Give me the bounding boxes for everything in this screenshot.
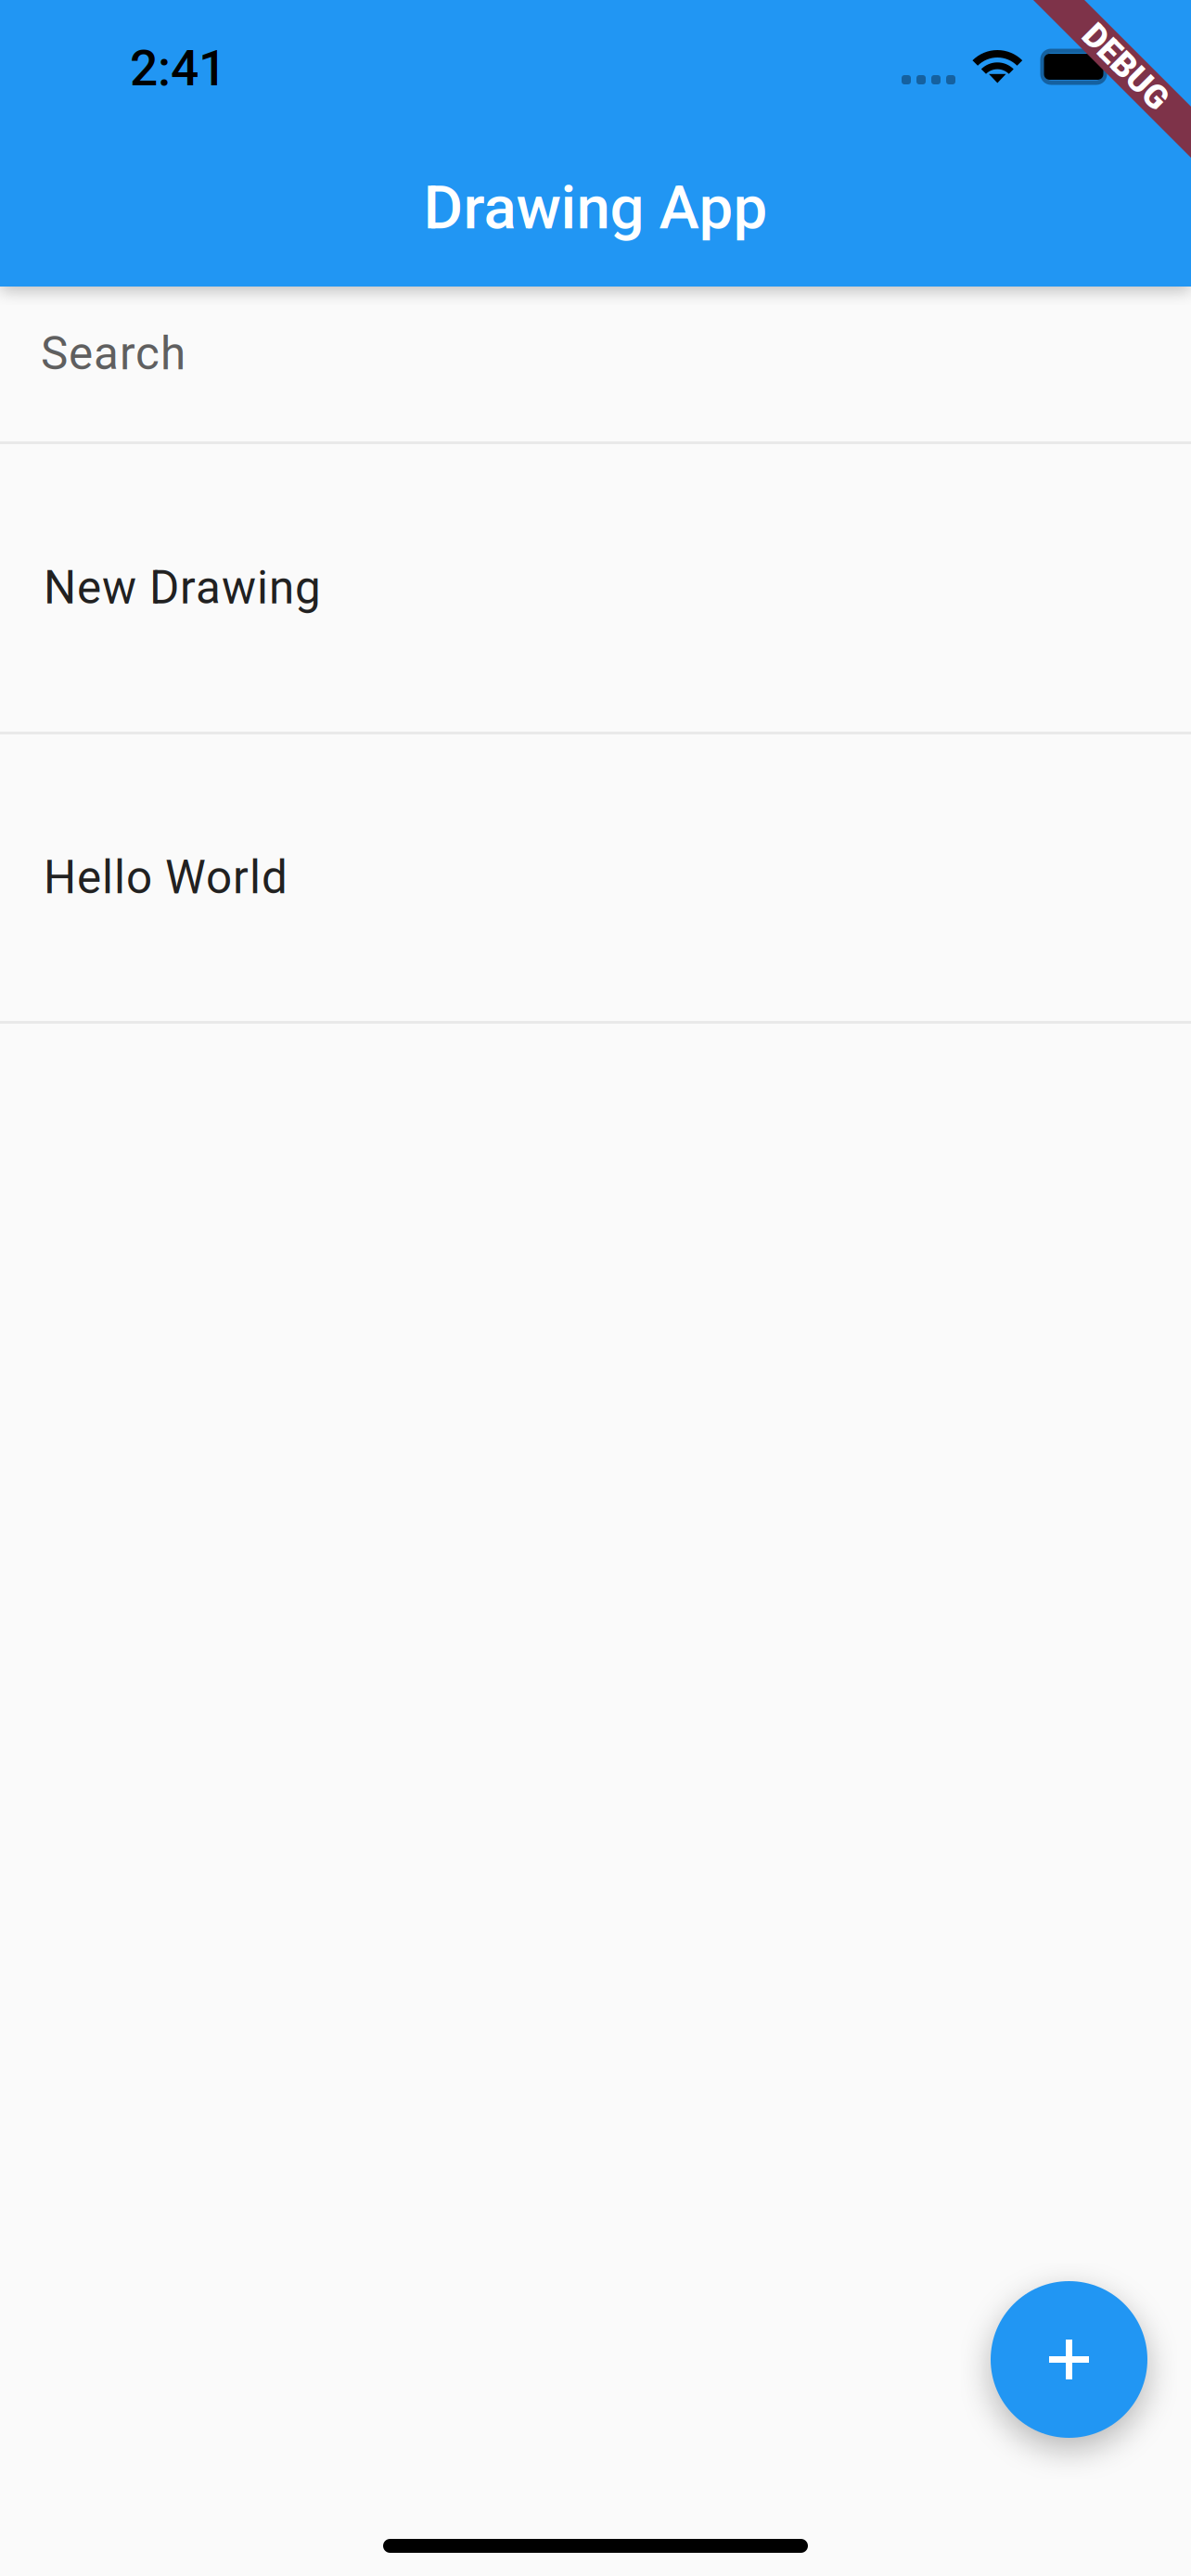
staticText: Search — [41, 327, 186, 381]
staticText: Drawing App — [423, 172, 768, 243]
staticText: DEBUG — [1073, 47, 1179, 86]
button[interactable]: Add drawing — [991, 2281, 1147, 2438]
button[interactable]: New Drawing — [0, 444, 1191, 732]
staticText: New Drawing — [44, 561, 321, 615]
button[interactable]: Hello World — [0, 734, 1191, 1021]
button[interactable]: Search — [0, 287, 1191, 441]
staticText: 2:41 — [130, 39, 226, 97]
staticText: Hello World — [44, 851, 288, 904]
